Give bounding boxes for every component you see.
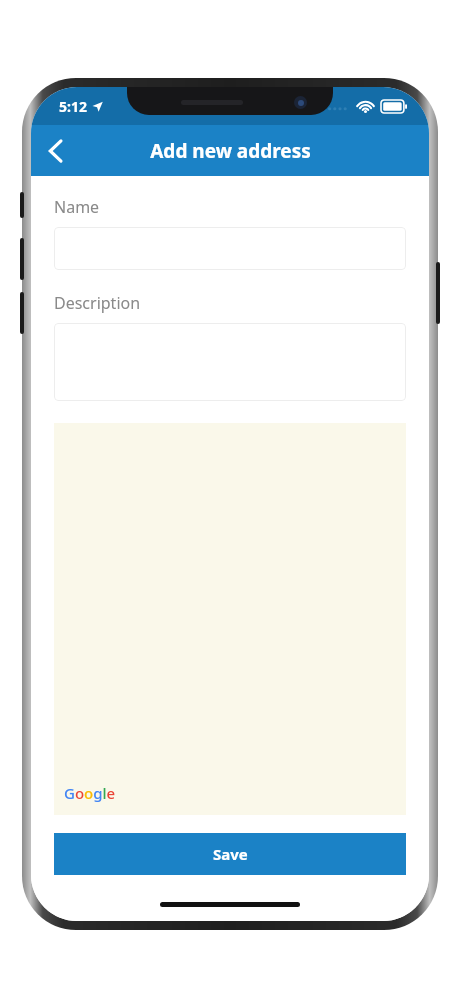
button[interactable]: Save bbox=[54, 833, 406, 875]
staticText: Google bbox=[64, 783, 116, 803]
button[interactable] bbox=[54, 227, 406, 270]
button[interactable]: Back bbox=[31, 127, 79, 175]
button[interactable]: Google bbox=[54, 423, 406, 815]
staticText: Save bbox=[213, 844, 248, 864]
staticText: Name bbox=[54, 196, 100, 218]
staticText: 5:12 bbox=[59, 97, 87, 116]
staticText: Description bbox=[54, 292, 141, 314]
button[interactable] bbox=[54, 323, 406, 401]
staticText: Add new address bbox=[150, 138, 311, 164]
